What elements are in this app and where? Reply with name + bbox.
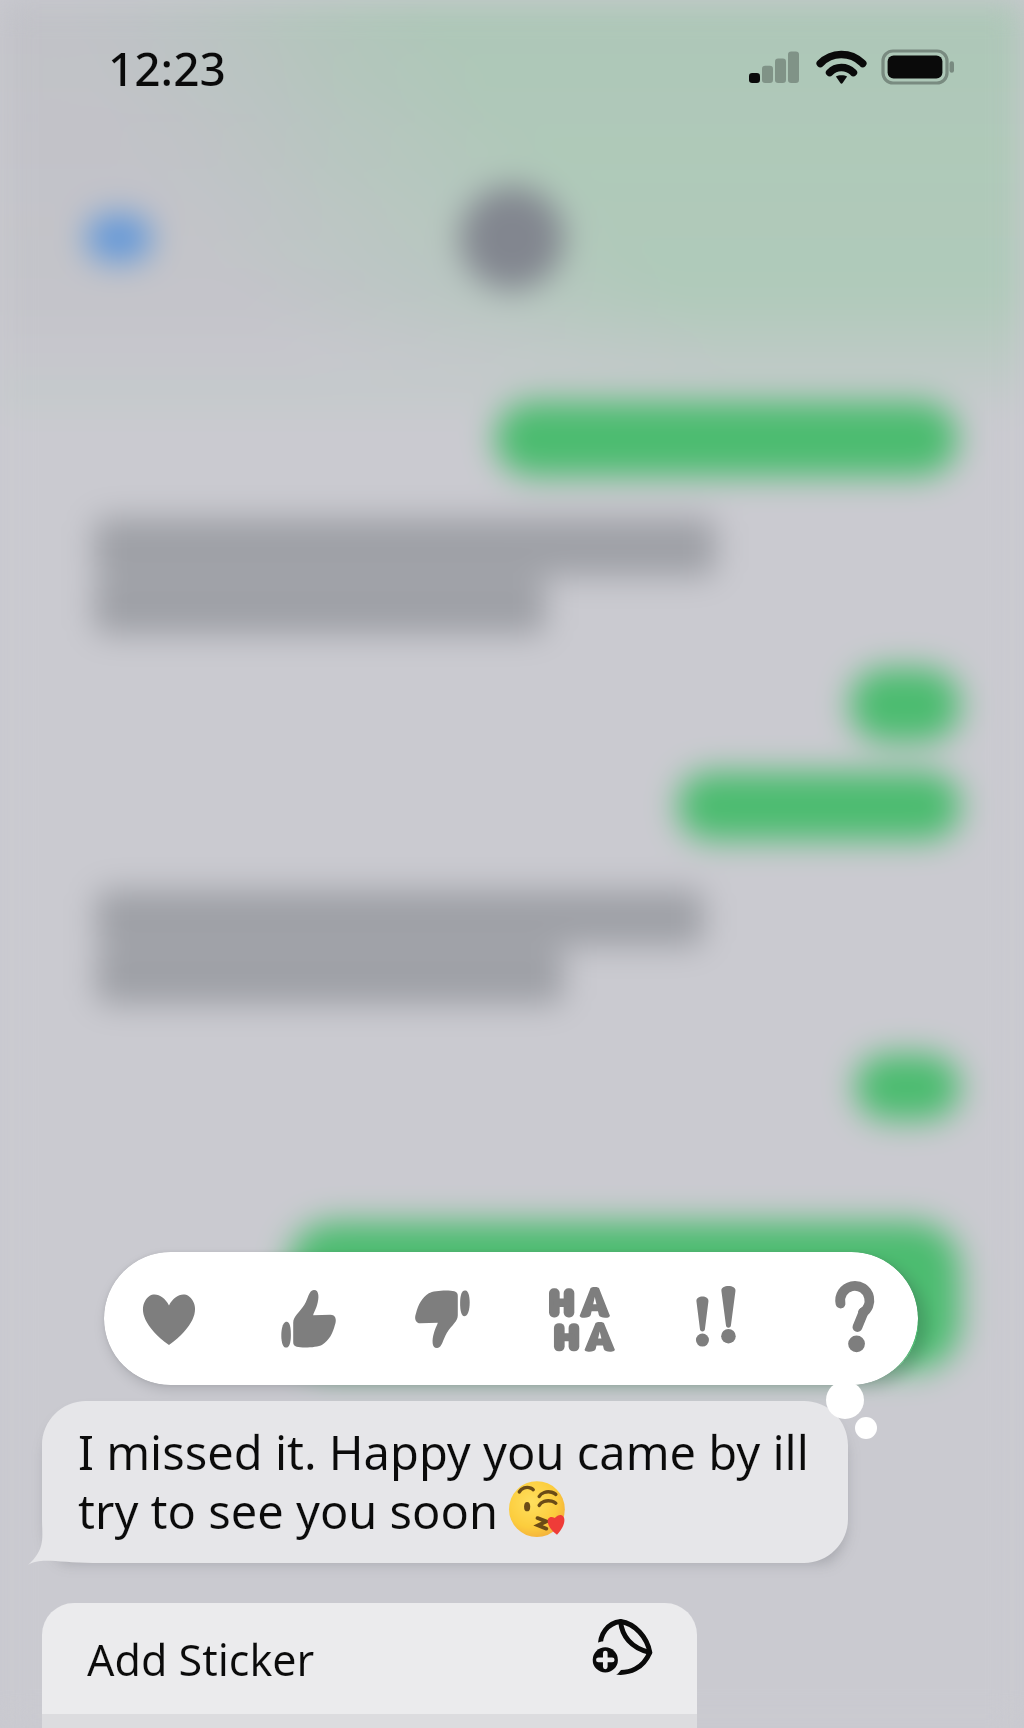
staticText: 12:23 [108,37,226,100]
button[interactable]: I missed it. Happy you came by ill try t… [28,1401,848,1563]
staticText: I missed it. Happy you came by ill try t… [78,1420,809,1543]
button[interactable]: Create sticker [576,1603,672,1696]
button[interactable]: Add Sticker [42,1603,697,1728]
button[interactable]: Dislike [375,1252,512,1385]
button[interactable]: Love [104,1252,238,1385]
button[interactable]: Haha [512,1252,649,1385]
button[interactable]: Like [238,1252,375,1385]
button[interactable]: Question [786,1252,918,1385]
button[interactable]: Emphasize [649,1252,786,1385]
staticText: Add Sticker [87,1630,315,1689]
